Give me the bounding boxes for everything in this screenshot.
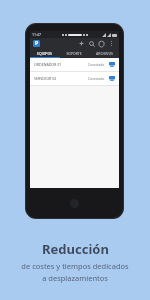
staticText: de costes y tiempos dedicados	[21, 261, 129, 271]
staticText: ARCHIVOS	[96, 51, 113, 56]
staticText: SOPORTE	[66, 51, 82, 56]
button[interactable]: Search	[87, 39, 96, 48]
staticText: Conectado	[88, 77, 105, 81]
staticText: 11:47	[32, 32, 41, 37]
staticText: Conectado	[88, 63, 105, 67]
button[interactable]: Security	[97, 39, 106, 48]
staticText: ORDENADOR 01	[34, 62, 88, 67]
button[interactable]: More options	[107, 39, 116, 48]
button[interactable]: SOPORTE	[59, 49, 89, 58]
staticText: P	[35, 40, 39, 47]
button[interactable]: ARCHIVOS	[89, 49, 119, 58]
staticText: EQUIPOS	[37, 51, 52, 56]
button[interactable]: Add	[77, 39, 86, 48]
staticText: a desplazamientos	[42, 273, 108, 283]
staticText: SERVIDOR 02	[34, 76, 88, 81]
button[interactable]: ORDENADOR 01	[30, 58, 119, 71]
button[interactable]: Logo	[33, 40, 40, 47]
button[interactable]: EQUIPOS	[30, 49, 59, 58]
button[interactable]: SERVIDOR 02	[30, 72, 119, 85]
staticText: Reducción	[42, 240, 109, 258]
